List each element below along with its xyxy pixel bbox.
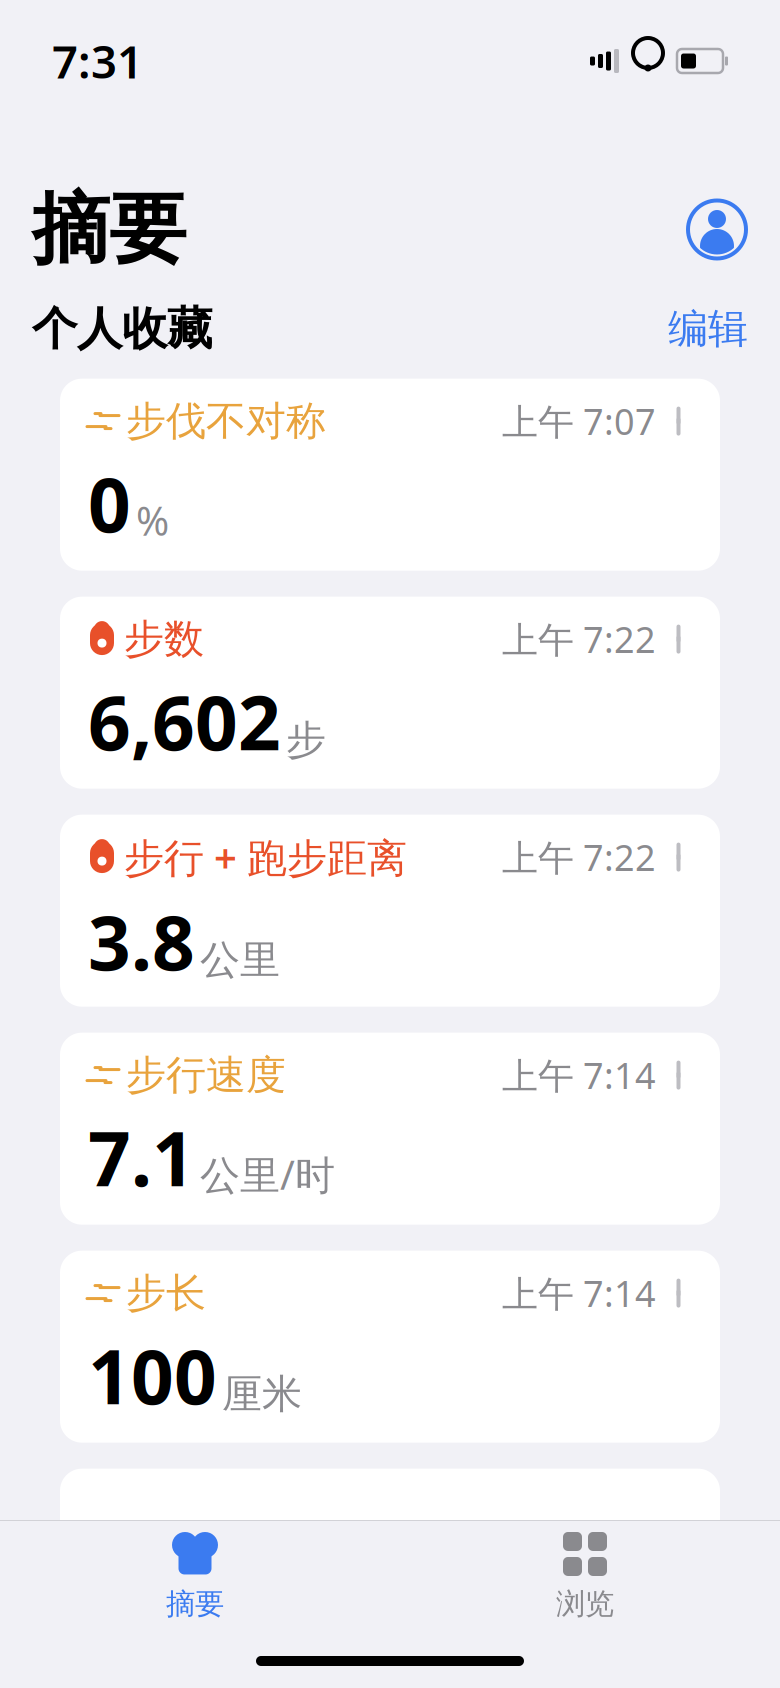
staticText: 上午 7:22 <box>502 833 656 881</box>
button[interactable]: 经期跟踪 <box>60 1469 720 1661</box>
staticText: 步长 <box>126 1268 206 1318</box>
staticText: 摘要 <box>166 1586 224 1622</box>
button[interactable]: 步数 <box>60 597 720 789</box>
button[interactable]: 步行 + 跑步距离 <box>60 815 720 1007</box>
staticText: 浏览 <box>556 1586 614 1622</box>
staticText: 0 <box>88 454 131 553</box>
button[interactable]: 编辑 <box>668 304 748 353</box>
staticText: 100 <box>88 1326 217 1425</box>
staticText: 摘要 <box>32 182 186 277</box>
staticText: 步行 + 跑步距离 <box>124 830 407 884</box>
button[interactable]: 步长 <box>60 1251 720 1443</box>
staticText: 个人收藏 <box>32 301 212 357</box>
button[interactable]: 浏览 <box>390 1521 780 1631</box>
staticText: 上午 7:14 <box>502 1269 656 1317</box>
staticText: 公里 <box>200 936 280 985</box>
button[interactable]: 步伐不对称 <box>60 379 720 571</box>
staticText: 步行速度 <box>126 1050 286 1100</box>
staticText: 上午 7:14 <box>502 1051 656 1099</box>
staticText: 7:31 <box>52 31 143 91</box>
staticText: 3.8 <box>88 892 195 991</box>
button[interactable]: 步行速度 <box>60 1033 720 1225</box>
button[interactable]: 摘要 <box>0 1521 390 1631</box>
staticText: 7.1 <box>88 1108 195 1207</box>
staticText: 步伐不对称 <box>126 396 326 446</box>
staticText: 经期跟踪 <box>128 1540 288 1589</box>
staticText: 6,602 <box>88 672 281 771</box>
staticText: 公里/时 <box>200 1148 335 1201</box>
staticText: 步 <box>286 716 326 765</box>
staticText: 厘米 <box>222 1370 302 1419</box>
staticText: 2021年12月 <box>458 1541 656 1589</box>
staticText: 编辑 <box>668 304 748 353</box>
staticText: 步数 <box>124 614 204 664</box>
button[interactable]: 个人资料 <box>686 198 748 260</box>
staticText: 上午 7:22 <box>502 615 656 663</box>
staticText: % <box>136 494 169 547</box>
staticText: 上午 7:07 <box>502 397 656 445</box>
